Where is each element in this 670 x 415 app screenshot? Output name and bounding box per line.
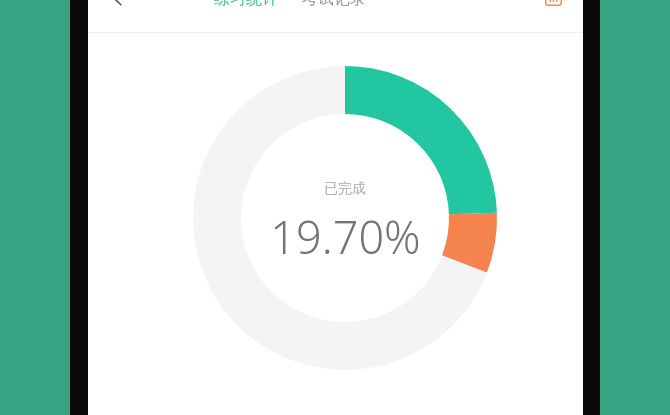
staticText: 练习统计 <box>214 0 278 9</box>
button[interactable]: 练习统计 <box>214 0 278 9</box>
button[interactable]: Calendar records <box>536 0 570 14</box>
button[interactable]: 考试记录 <box>302 0 366 9</box>
button[interactable]: Back <box>100 0 136 15</box>
staticText: 已完成 <box>324 180 366 198</box>
staticText: 考试记录 <box>302 0 366 9</box>
staticText: 19.70% <box>270 206 421 267</box>
